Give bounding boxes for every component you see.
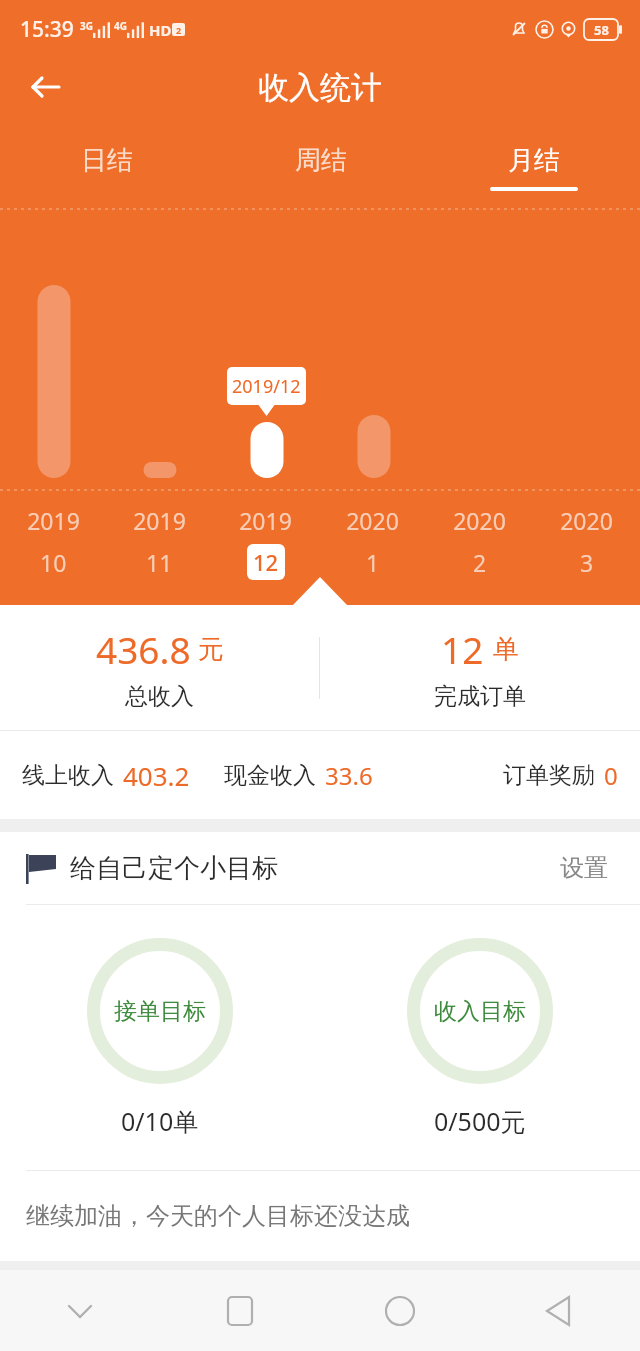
staticText: 2 <box>176 24 182 36</box>
staticText: 436.8 <box>96 624 191 674</box>
button[interactable]: 2019 <box>0 505 106 580</box>
staticText: 2019 <box>27 505 80 536</box>
button[interactable]: 2020 <box>533 505 640 580</box>
staticText: 收入目标 <box>434 997 526 1026</box>
staticText: 2019 <box>239 505 292 536</box>
button[interactable]: 收入目标 <box>320 938 640 1138</box>
button[interactable]: 设置 <box>554 847 614 889</box>
staticText: 日结 <box>81 144 133 177</box>
staticText: 接单目标 <box>114 997 206 1026</box>
staticText: 线上收入 <box>22 761 114 790</box>
button[interactable]: 接单目标 <box>0 938 320 1138</box>
button[interactable]: 2019 <box>106 505 212 580</box>
staticText: 完成订单 <box>434 682 526 711</box>
staticText: 现金收入 <box>224 761 316 790</box>
staticText: 3G <box>80 19 93 33</box>
staticText: 12 <box>441 624 484 674</box>
staticText: 2020 <box>560 505 613 536</box>
staticText: 给自己定个小目标 <box>70 852 278 885</box>
staticText: 0/10单 <box>121 1104 199 1138</box>
staticText: 总收入 <box>125 682 194 711</box>
staticText: 收入统计 <box>258 68 382 107</box>
staticText: 0 <box>604 759 618 792</box>
staticText: 3 <box>580 547 594 578</box>
staticText: 单 <box>493 633 519 666</box>
staticText: 10 <box>40 547 67 578</box>
staticText: 403.2 <box>123 758 190 793</box>
button[interactable]: 月结 <box>427 116 640 210</box>
button[interactable]: Recents <box>160 1270 320 1351</box>
staticText: 设置 <box>560 853 608 883</box>
button[interactable]: Hide keyboard <box>0 1270 160 1351</box>
staticText: 继续加油，今天的个人目标还没达成 <box>26 1201 410 1231</box>
button[interactable]: 周结 <box>214 116 427 210</box>
button[interactable]: 2019 <box>212 505 319 580</box>
staticText: 12 <box>253 547 279 577</box>
button[interactable]: 2020 <box>426 505 533 580</box>
staticText: 15:39 <box>20 15 74 44</box>
staticText: 1 <box>366 547 380 578</box>
button[interactable]: Home <box>320 1270 480 1351</box>
staticText: 11 <box>146 547 173 578</box>
staticText: 33.6 <box>325 759 373 792</box>
staticText: 元 <box>198 633 224 666</box>
staticText: 月结 <box>508 144 560 177</box>
button[interactable]: 日结 <box>0 116 214 210</box>
staticText: 2019 <box>133 505 186 536</box>
button[interactable]: Back <box>480 1270 640 1351</box>
staticText: 0/500元 <box>434 1104 526 1138</box>
button[interactable]: 2020 <box>319 505 426 580</box>
staticText: 2020 <box>453 505 506 536</box>
staticText: 58 <box>594 21 609 39</box>
staticText: 2019/12 <box>232 374 301 399</box>
staticText: 周结 <box>295 144 347 177</box>
staticText: 2020 <box>346 505 399 536</box>
staticText: 4G <box>114 19 127 33</box>
button[interactable]: Back <box>22 63 70 111</box>
staticText: 订单奖励 <box>503 761 595 790</box>
staticText: 2 <box>473 547 487 578</box>
staticText: HD <box>149 20 172 40</box>
